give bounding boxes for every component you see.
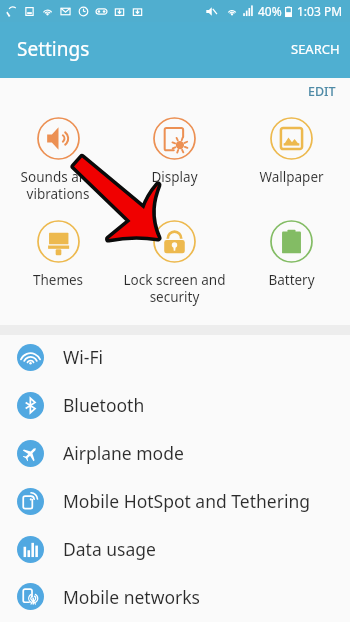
button[interactable]: EDIT xyxy=(296,79,350,104)
button[interactable]: Themes xyxy=(0,207,116,289)
staticText: Mobile networks xyxy=(63,585,200,609)
staticText: Sounds and vibrations xyxy=(0,168,116,203)
staticText: Wi-Fi xyxy=(63,345,104,369)
button[interactable]: Wallpaper xyxy=(233,104,350,186)
button[interactable]: Data usage xyxy=(0,525,350,573)
button[interactable]: Wi-Fi xyxy=(0,333,350,381)
button[interactable]: Airplane mode xyxy=(0,429,350,477)
staticText: Mobile HotSpot and Tethering xyxy=(63,489,311,513)
button[interactable]: Mobile HotSpot and Tethering xyxy=(0,477,350,525)
staticText: Themes xyxy=(0,271,116,289)
staticText: EDIT xyxy=(308,83,336,100)
staticText: Lock screen and security xyxy=(116,271,233,306)
staticText: Bluetooth xyxy=(63,393,145,417)
button[interactable]: Battery xyxy=(233,207,350,289)
button[interactable]: SEARCH xyxy=(279,30,350,70)
staticText: Airplane mode xyxy=(63,441,184,465)
staticText: Data usage xyxy=(63,537,156,561)
button[interactable]: Bluetooth xyxy=(0,381,350,429)
button[interactable]: Lock screen and security xyxy=(116,207,233,306)
staticText: SEARCH xyxy=(291,40,340,58)
staticText: Battery xyxy=(233,271,350,289)
staticText: Settings xyxy=(17,36,90,62)
staticText: Display xyxy=(116,168,233,186)
button[interactable]: Mobile networks xyxy=(0,573,350,620)
staticText: Wallpaper xyxy=(233,168,350,186)
button[interactable]: Sounds and vibrations xyxy=(0,104,116,203)
button[interactable]: Display xyxy=(116,104,233,186)
staticText: 40% xyxy=(258,3,282,19)
staticText: 1:03 PM xyxy=(297,3,343,19)
